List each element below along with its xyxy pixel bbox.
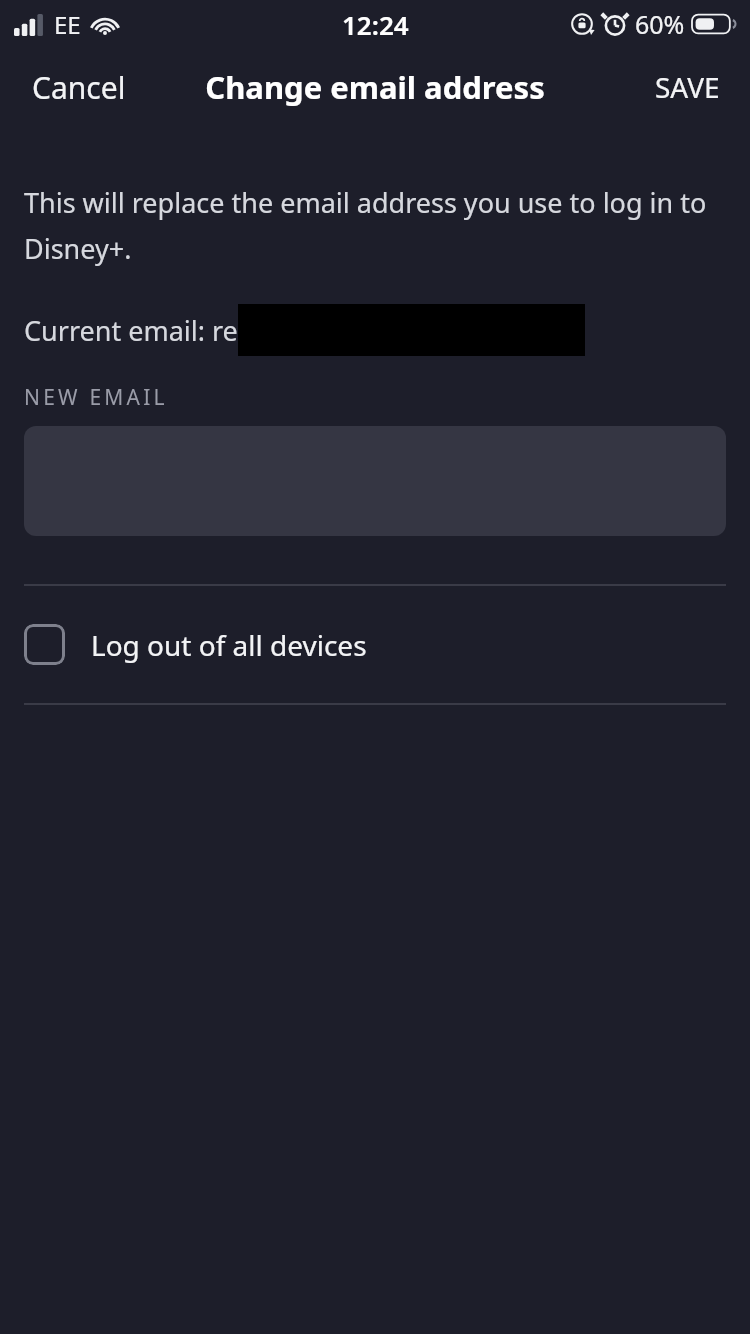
staticText: Cancel [32, 67, 126, 108]
staticText: SAVE [655, 68, 720, 106]
button[interactable]: Log out of all devices [0, 586, 750, 703]
staticText: Log out of all devices [91, 626, 367, 664]
staticText: EE [54, 8, 81, 41]
staticText: NEW EMAIL [24, 383, 168, 412]
staticText: 12:24 [342, 7, 409, 42]
button[interactable]: SAVE [641, 58, 734, 116]
staticText: Current email: redacted.com [24, 312, 386, 349]
button[interactable]: Cancel [16, 57, 142, 118]
staticText: 60% [635, 7, 685, 41]
staticText: Change email address [205, 66, 545, 108]
staticText: This will replace the email address you … [24, 184, 726, 267]
